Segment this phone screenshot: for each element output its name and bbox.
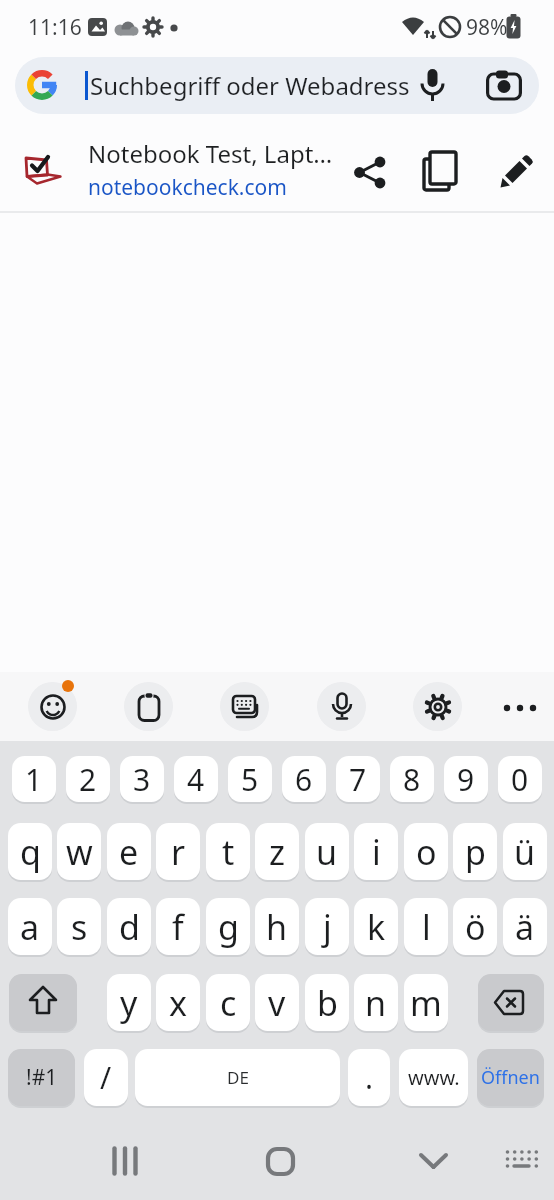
staticText: 2 xyxy=(79,759,97,800)
button[interactable]: 3 xyxy=(120,756,164,802)
staticText: c xyxy=(220,980,237,1026)
button[interactable]: t xyxy=(206,823,250,880)
button[interactable]: n xyxy=(354,974,398,1031)
staticText: j xyxy=(323,904,332,950)
button[interactable]: g xyxy=(206,898,250,955)
button[interactable] xyxy=(15,57,539,114)
staticText: Notebook Test, Lapt… xyxy=(88,137,333,170)
button[interactable]: Öffnen xyxy=(477,1049,544,1106)
button[interactable]: DE xyxy=(135,1049,340,1106)
button[interactable] xyxy=(345,148,393,196)
button[interactable]: ö xyxy=(453,898,497,955)
button[interactable]: 6 xyxy=(282,756,326,802)
button[interactable]: w xyxy=(57,823,101,880)
staticText: 11:16 xyxy=(28,13,82,42)
staticText: DE xyxy=(227,1066,249,1089)
staticText: g xyxy=(218,904,239,950)
button[interactable]: l xyxy=(404,898,448,955)
staticText: x xyxy=(169,980,187,1026)
button[interactable]: z xyxy=(255,823,299,880)
button[interactable]: r xyxy=(156,823,200,880)
button[interactable]: y xyxy=(107,974,151,1031)
button[interactable] xyxy=(478,974,544,1031)
staticText: notebookcheck.com xyxy=(88,173,287,202)
staticText: h xyxy=(266,904,288,950)
staticText: 1 xyxy=(25,759,43,800)
staticText: z xyxy=(269,829,285,875)
staticText: r xyxy=(171,829,186,875)
button[interactable] xyxy=(498,1140,548,1182)
button[interactable]: 5 xyxy=(228,756,272,802)
button[interactable]: !#1 xyxy=(8,1049,75,1106)
button[interactable]: i xyxy=(354,823,398,880)
button[interactable]: f xyxy=(156,898,200,955)
staticText: d xyxy=(119,904,140,950)
staticText: 9 xyxy=(457,759,475,800)
button[interactable]: / xyxy=(84,1049,128,1106)
button[interactable]: a xyxy=(8,898,52,955)
button[interactable]: ü xyxy=(503,823,547,880)
button[interactable]: b xyxy=(305,974,349,1031)
button[interactable]: www. xyxy=(399,1049,468,1106)
button[interactable] xyxy=(0,125,554,211)
button[interactable]: c xyxy=(206,974,250,1031)
staticText: ö xyxy=(465,904,486,950)
button[interactable] xyxy=(413,682,462,731)
staticText: s xyxy=(71,904,88,950)
button[interactable] xyxy=(255,1136,305,1186)
staticText: 5 xyxy=(241,759,259,800)
button[interactable]: k xyxy=(354,898,398,955)
staticText: a xyxy=(20,904,40,950)
button[interactable] xyxy=(28,682,77,731)
button[interactable]: e xyxy=(107,823,151,880)
button[interactable] xyxy=(9,974,77,1031)
button[interactable] xyxy=(416,147,464,195)
button[interactable]: 1 xyxy=(12,756,56,802)
button[interactable] xyxy=(492,148,540,196)
button[interactable] xyxy=(124,682,173,731)
button[interactable] xyxy=(100,1136,150,1186)
button[interactable]: q xyxy=(8,823,52,880)
staticText: i xyxy=(372,829,381,875)
button[interactable]: . xyxy=(348,1049,390,1106)
staticText: p xyxy=(465,829,486,875)
button[interactable]: m xyxy=(404,974,448,1031)
staticText: e xyxy=(119,829,139,875)
button[interactable] xyxy=(220,682,269,731)
staticText: o xyxy=(416,829,437,875)
staticText: 98% xyxy=(466,13,508,42)
button[interactable]: v xyxy=(255,974,299,1031)
button[interactable]: d xyxy=(107,898,151,955)
button[interactable]: 2 xyxy=(66,756,110,802)
staticText: !#1 xyxy=(26,1063,58,1092)
staticText: Suchbegriff oder Webadress xyxy=(90,69,410,102)
staticText: www. xyxy=(408,1064,460,1091)
button[interactable] xyxy=(496,690,544,726)
button[interactable]: 9 xyxy=(444,756,488,802)
button[interactable] xyxy=(408,1136,458,1186)
staticText: y xyxy=(120,980,138,1026)
button[interactable]: j xyxy=(305,898,349,955)
staticText: 4 xyxy=(187,759,205,800)
button[interactable]: p xyxy=(453,823,497,880)
button[interactable]: h xyxy=(255,898,299,955)
staticText: . xyxy=(365,1057,374,1098)
staticText: t xyxy=(222,829,235,875)
staticText: f xyxy=(172,904,184,950)
button[interactable]: 8 xyxy=(390,756,434,802)
button[interactable]: x xyxy=(156,974,200,1031)
button[interactable]: 7 xyxy=(336,756,380,802)
button[interactable] xyxy=(317,682,366,731)
button[interactable]: u xyxy=(305,823,349,880)
staticText: 8 xyxy=(403,759,421,800)
staticText: w xyxy=(66,829,93,875)
button[interactable]: ä xyxy=(503,898,547,955)
staticText: k xyxy=(367,904,386,950)
button[interactable]: o xyxy=(404,823,448,880)
staticText: m xyxy=(410,980,442,1026)
button[interactable]: 0 xyxy=(498,756,542,802)
staticText: l xyxy=(422,904,431,950)
button[interactable]: s xyxy=(57,898,101,955)
button[interactable]: 4 xyxy=(174,756,218,802)
staticText: 0 xyxy=(511,759,529,800)
